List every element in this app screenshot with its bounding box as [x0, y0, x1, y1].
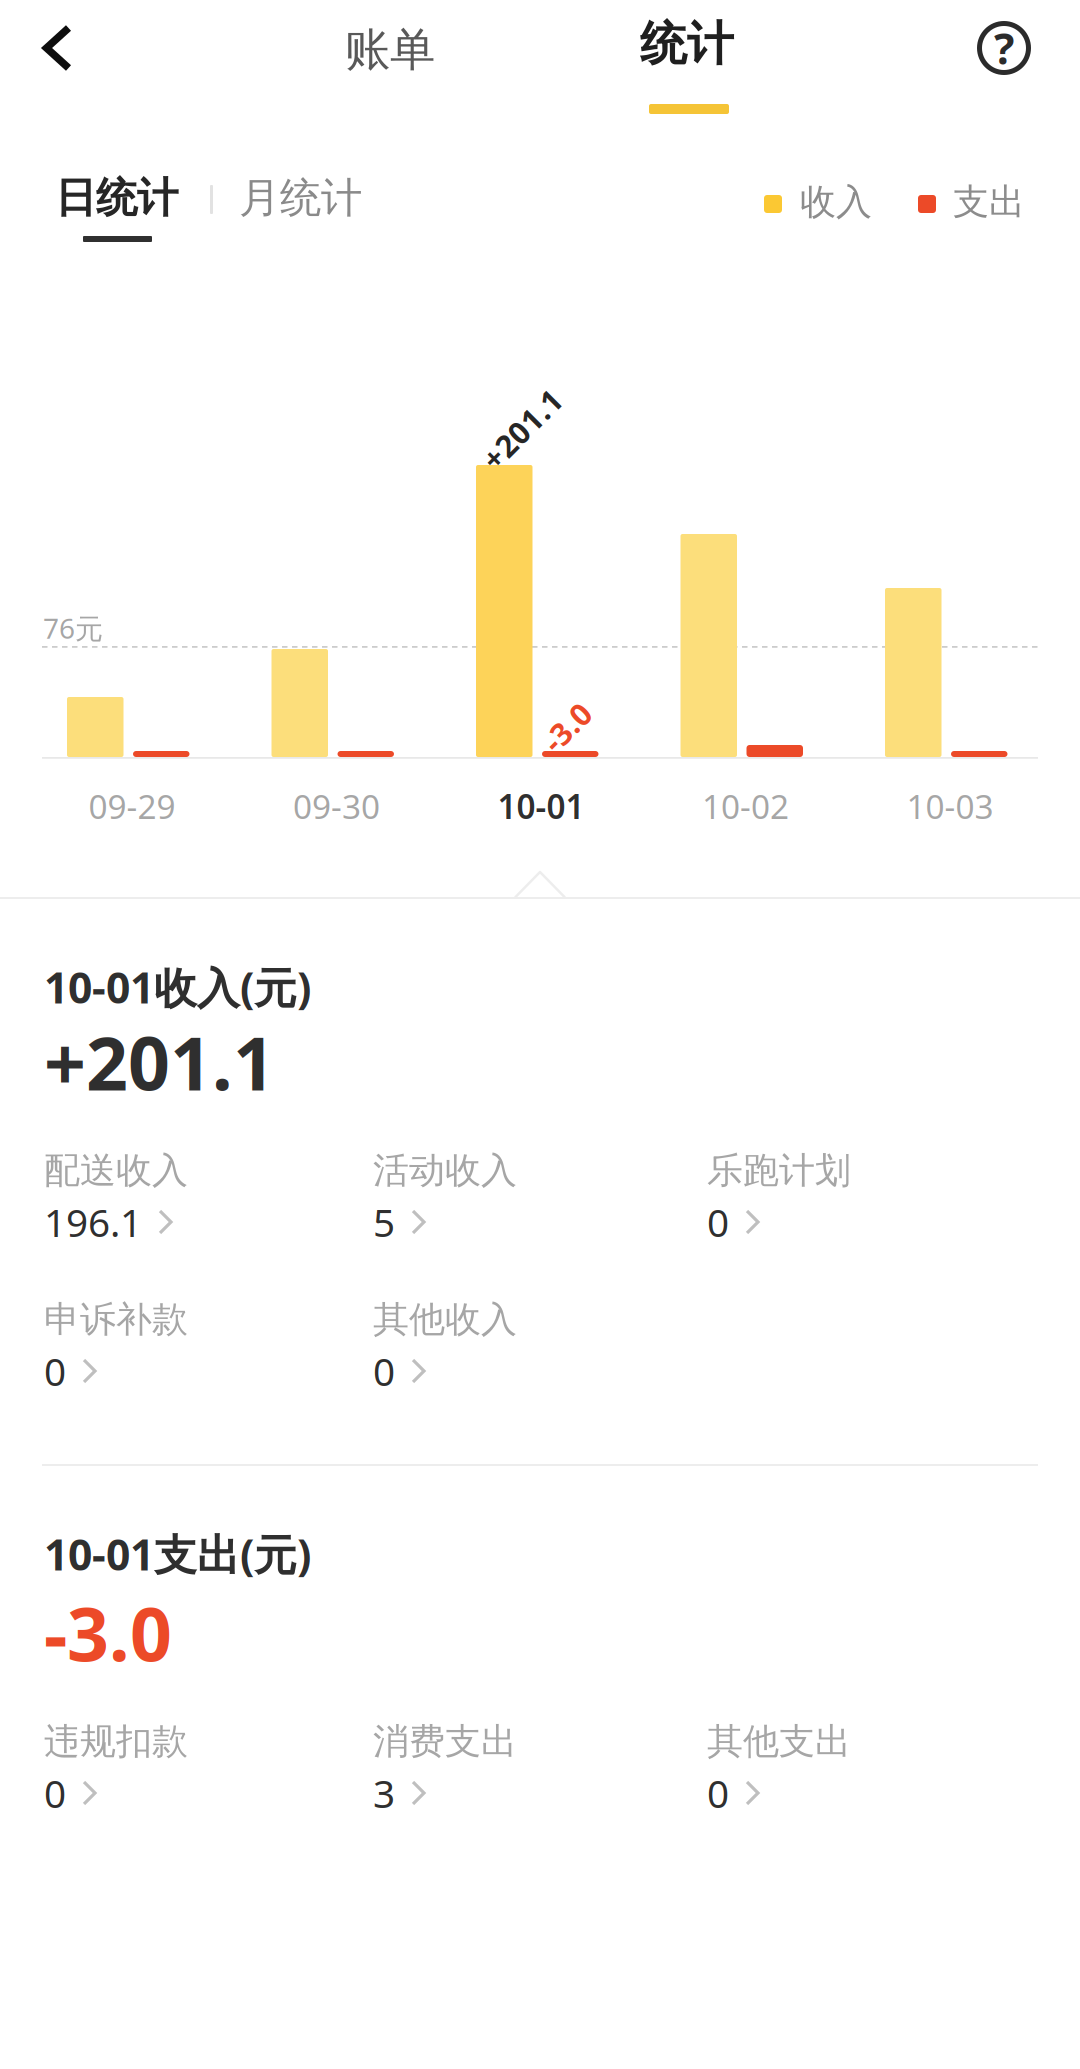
button[interactable]: 统计 [640, 12, 840, 76]
button[interactable]: 月统计 [239, 170, 419, 226]
staticText: 日统计 [55, 173, 178, 223]
button[interactable]: 配送收入 [44, 1143, 344, 1253]
staticText: 10-01收入(元) [44, 959, 311, 1015]
staticText: 其他支出 [707, 1719, 851, 1764]
staticText: 收入 [800, 180, 872, 224]
button[interactable]: 其他支出 [707, 1714, 1007, 1824]
staticText: 配送收入 [44, 1148, 188, 1193]
button[interactable]: 账单 [345, 18, 525, 82]
staticText: 支出 [953, 180, 1025, 224]
staticText: 10-02 [702, 784, 789, 828]
staticText: 5 [373, 1196, 395, 1248]
button[interactable]: Help [977, 21, 1031, 75]
staticText: 违规扣款 [44, 1719, 188, 1764]
button[interactable]: 申诉补款 [44, 1292, 344, 1402]
button[interactable]: 活动收入 [373, 1143, 673, 1253]
button[interactable]: Back [42, 24, 73, 72]
staticText: 统计 [640, 15, 734, 73]
staticText: 0 [44, 1767, 66, 1819]
staticText: 0 [373, 1345, 395, 1397]
staticText: +201.1 [44, 1013, 275, 1111]
button[interactable]: 乐跑计划 [707, 1143, 1007, 1253]
staticText: 其他收入 [373, 1297, 517, 1342]
staticText: 月统计 [239, 173, 362, 223]
staticText: 10-01支出(元) [44, 1526, 311, 1582]
button[interactable]: 日统计 [55, 170, 235, 226]
staticText: 10-03 [906, 784, 993, 828]
staticText: 0 [707, 1196, 729, 1248]
staticText: +201.1 [472, 409, 571, 449]
staticText: 0 [707, 1767, 729, 1819]
staticText: 196.1 [44, 1196, 142, 1248]
staticText: 09-30 [293, 784, 380, 828]
staticText: -3.0 [44, 1584, 172, 1682]
staticText: 消费支出 [373, 1719, 517, 1764]
button[interactable]: 其他收入 [373, 1292, 673, 1402]
staticText: ? [994, 20, 1014, 76]
staticText: 乐跑计划 [707, 1148, 851, 1193]
button[interactable]: 消费支出 [373, 1714, 673, 1824]
staticText: 申诉补款 [44, 1297, 188, 1342]
staticText: 10-01 [497, 784, 584, 828]
staticText: -3.0 [539, 707, 594, 747]
staticText: 0 [44, 1345, 66, 1397]
button[interactable]: 违规扣款 [44, 1714, 344, 1824]
staticText: 3 [373, 1767, 395, 1819]
staticText: 账单 [345, 22, 435, 78]
staticText: 09-29 [88, 784, 175, 828]
staticText: 76元 [43, 609, 103, 647]
staticText: 活动收入 [373, 1148, 517, 1193]
